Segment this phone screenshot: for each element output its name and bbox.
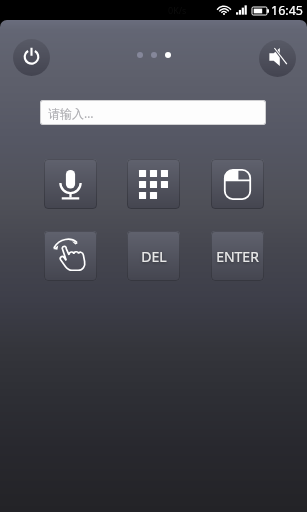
button[interactable]: Microphone bbox=[44, 159, 97, 209]
staticText: 请输入… bbox=[48, 105, 94, 121]
button[interactable]: Gesture bbox=[44, 231, 97, 281]
button[interactable]: Dialpad bbox=[127, 159, 180, 209]
button[interactable]: Mute bbox=[259, 40, 296, 77]
staticText: DEL bbox=[141, 247, 167, 266]
button[interactable]: 请输入… bbox=[40, 100, 266, 125]
button[interactable]: Power bbox=[13, 39, 50, 76]
staticText: ENTER bbox=[216, 247, 259, 266]
button[interactable]: ENTER bbox=[211, 231, 264, 281]
staticText: 0K/s bbox=[168, 4, 187, 16]
button[interactable]: DEL bbox=[127, 231, 180, 281]
button[interactable]: Mouse bbox=[211, 159, 264, 209]
staticText: 16:45 bbox=[271, 2, 303, 19]
